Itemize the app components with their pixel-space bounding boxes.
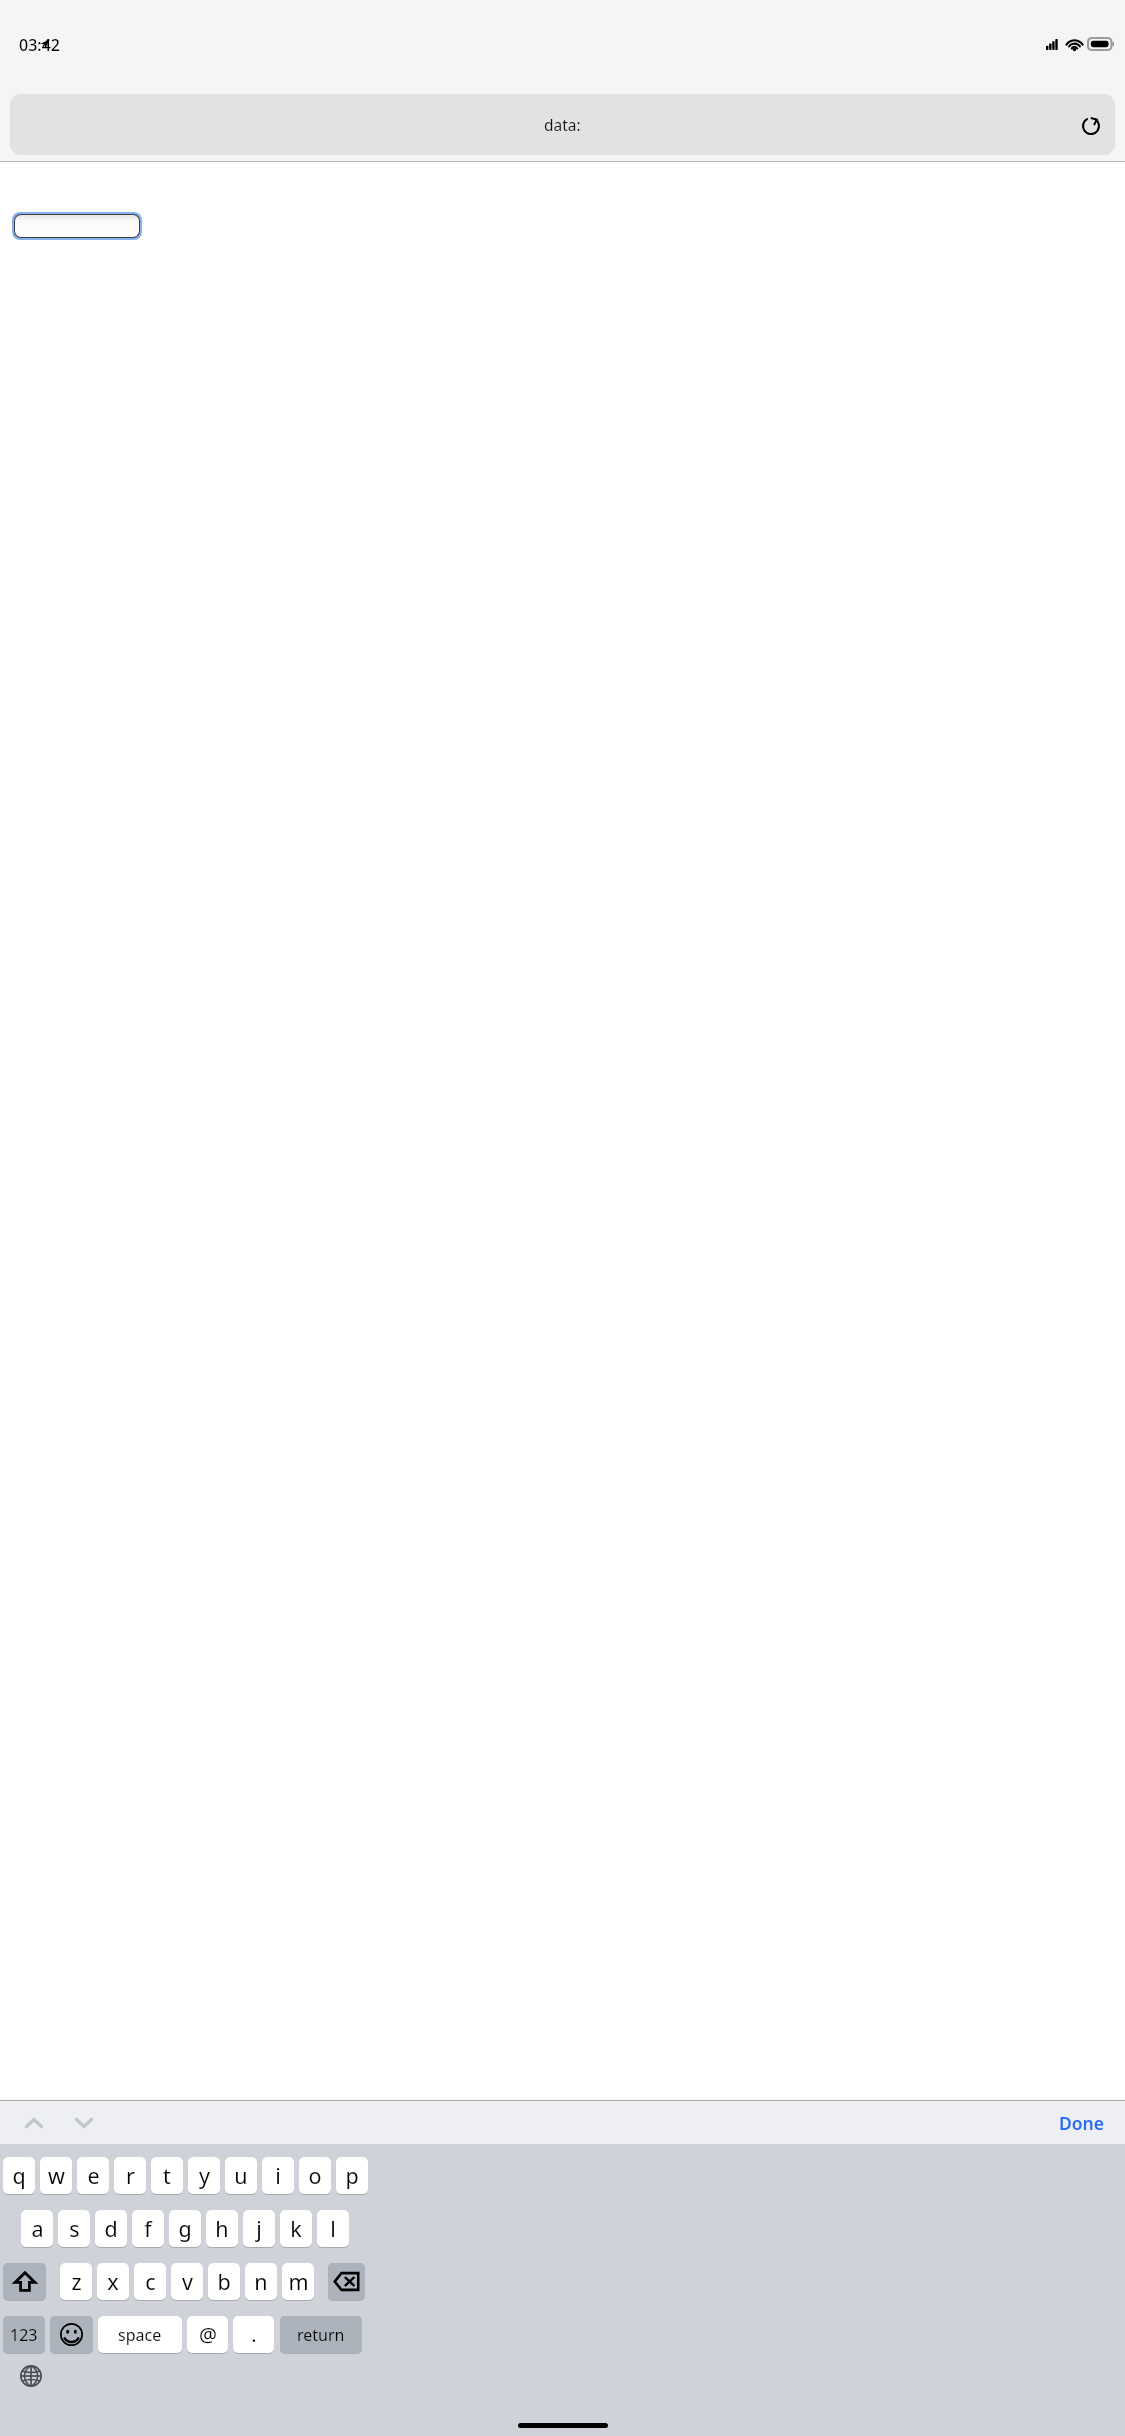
staticText: i [275,2161,281,2190]
staticText: c [145,2267,156,2296]
staticText: data: [544,114,581,135]
button[interactable] [15,215,139,237]
button[interactable]: data: [10,94,1115,155]
button[interactable]: z [60,2263,92,2302]
button[interactable]: return [280,2316,362,2355]
staticText: space [118,2324,162,2346]
staticText: r [126,2161,135,2190]
staticText: v [182,2267,193,2296]
button[interactable]: a [21,2210,53,2249]
button[interactable]: Backspace [328,2263,365,2302]
button[interactable]: Emoji [50,2316,93,2355]
staticText: x [107,2267,119,2296]
staticText: a [31,2214,44,2243]
button[interactable]: t [151,2157,183,2196]
staticText: y [199,2161,210,2190]
button[interactable]: Shift [3,2263,46,2302]
button[interactable]: . [233,2316,274,2355]
staticText: n [254,2267,268,2296]
staticText: @ [199,2321,217,2348]
staticText: l [330,2214,336,2243]
staticText: return [297,2324,345,2346]
button[interactable]: m [282,2263,314,2302]
staticText: j [256,2214,262,2243]
staticText: t [163,2161,171,2190]
button[interactable]: n [245,2263,277,2302]
button[interactable]: f [132,2210,164,2249]
staticText: 123 [10,2324,38,2346]
staticText: g [178,2214,192,2243]
button[interactable]: j [243,2210,275,2249]
button[interactable]: g [169,2210,201,2249]
button[interactable]: d [95,2210,127,2249]
button[interactable]: Change keyboard [9,2354,53,2398]
button[interactable]: @ [187,2316,228,2355]
staticText: . [251,2321,257,2348]
button[interactable]: r [114,2157,146,2196]
button[interactable]: p [336,2157,368,2196]
button[interactable]: Previous field [12,2101,56,2144]
button[interactable]: v [171,2263,203,2302]
button[interactable]: e [77,2157,109,2196]
staticText: p [345,2161,359,2190]
button[interactable]: y [188,2157,220,2196]
staticText: k [290,2214,302,2243]
button[interactable]: c [134,2263,166,2302]
staticText: q [12,2161,26,2190]
staticText: z [71,2267,82,2296]
button[interactable]: Numbers [3,2316,45,2355]
staticText: m [288,2267,309,2296]
button[interactable]: o [299,2157,331,2196]
button[interactable]: h [206,2210,238,2249]
staticText: f [144,2214,152,2243]
staticText: s [69,2214,80,2243]
staticText: w [48,2161,65,2190]
staticText: Done [1059,2111,1105,2135]
button[interactable]: Next field [62,2101,106,2144]
button[interactable]: Done [1053,2107,1111,2139]
button[interactable]: u [225,2157,257,2196]
staticText: b [217,2267,231,2296]
button[interactable]: space [98,2316,182,2355]
button[interactable]: l [317,2210,349,2249]
staticText: d [104,2214,118,2243]
button[interactable]: s [58,2210,90,2249]
button[interactable]: q [3,2157,35,2196]
button[interactable]: b [208,2263,240,2302]
staticText: u [234,2161,248,2190]
staticText: o [308,2161,322,2190]
staticText: h [215,2214,229,2243]
button[interactable]: i [262,2157,294,2196]
staticText: e [87,2161,100,2190]
staticText: 03:42 [19,34,60,56]
button[interactable]: k [280,2210,312,2249]
button[interactable]: w [40,2157,72,2196]
button[interactable]: Reload page [1073,107,1109,143]
button[interactable]: x [97,2263,129,2302]
